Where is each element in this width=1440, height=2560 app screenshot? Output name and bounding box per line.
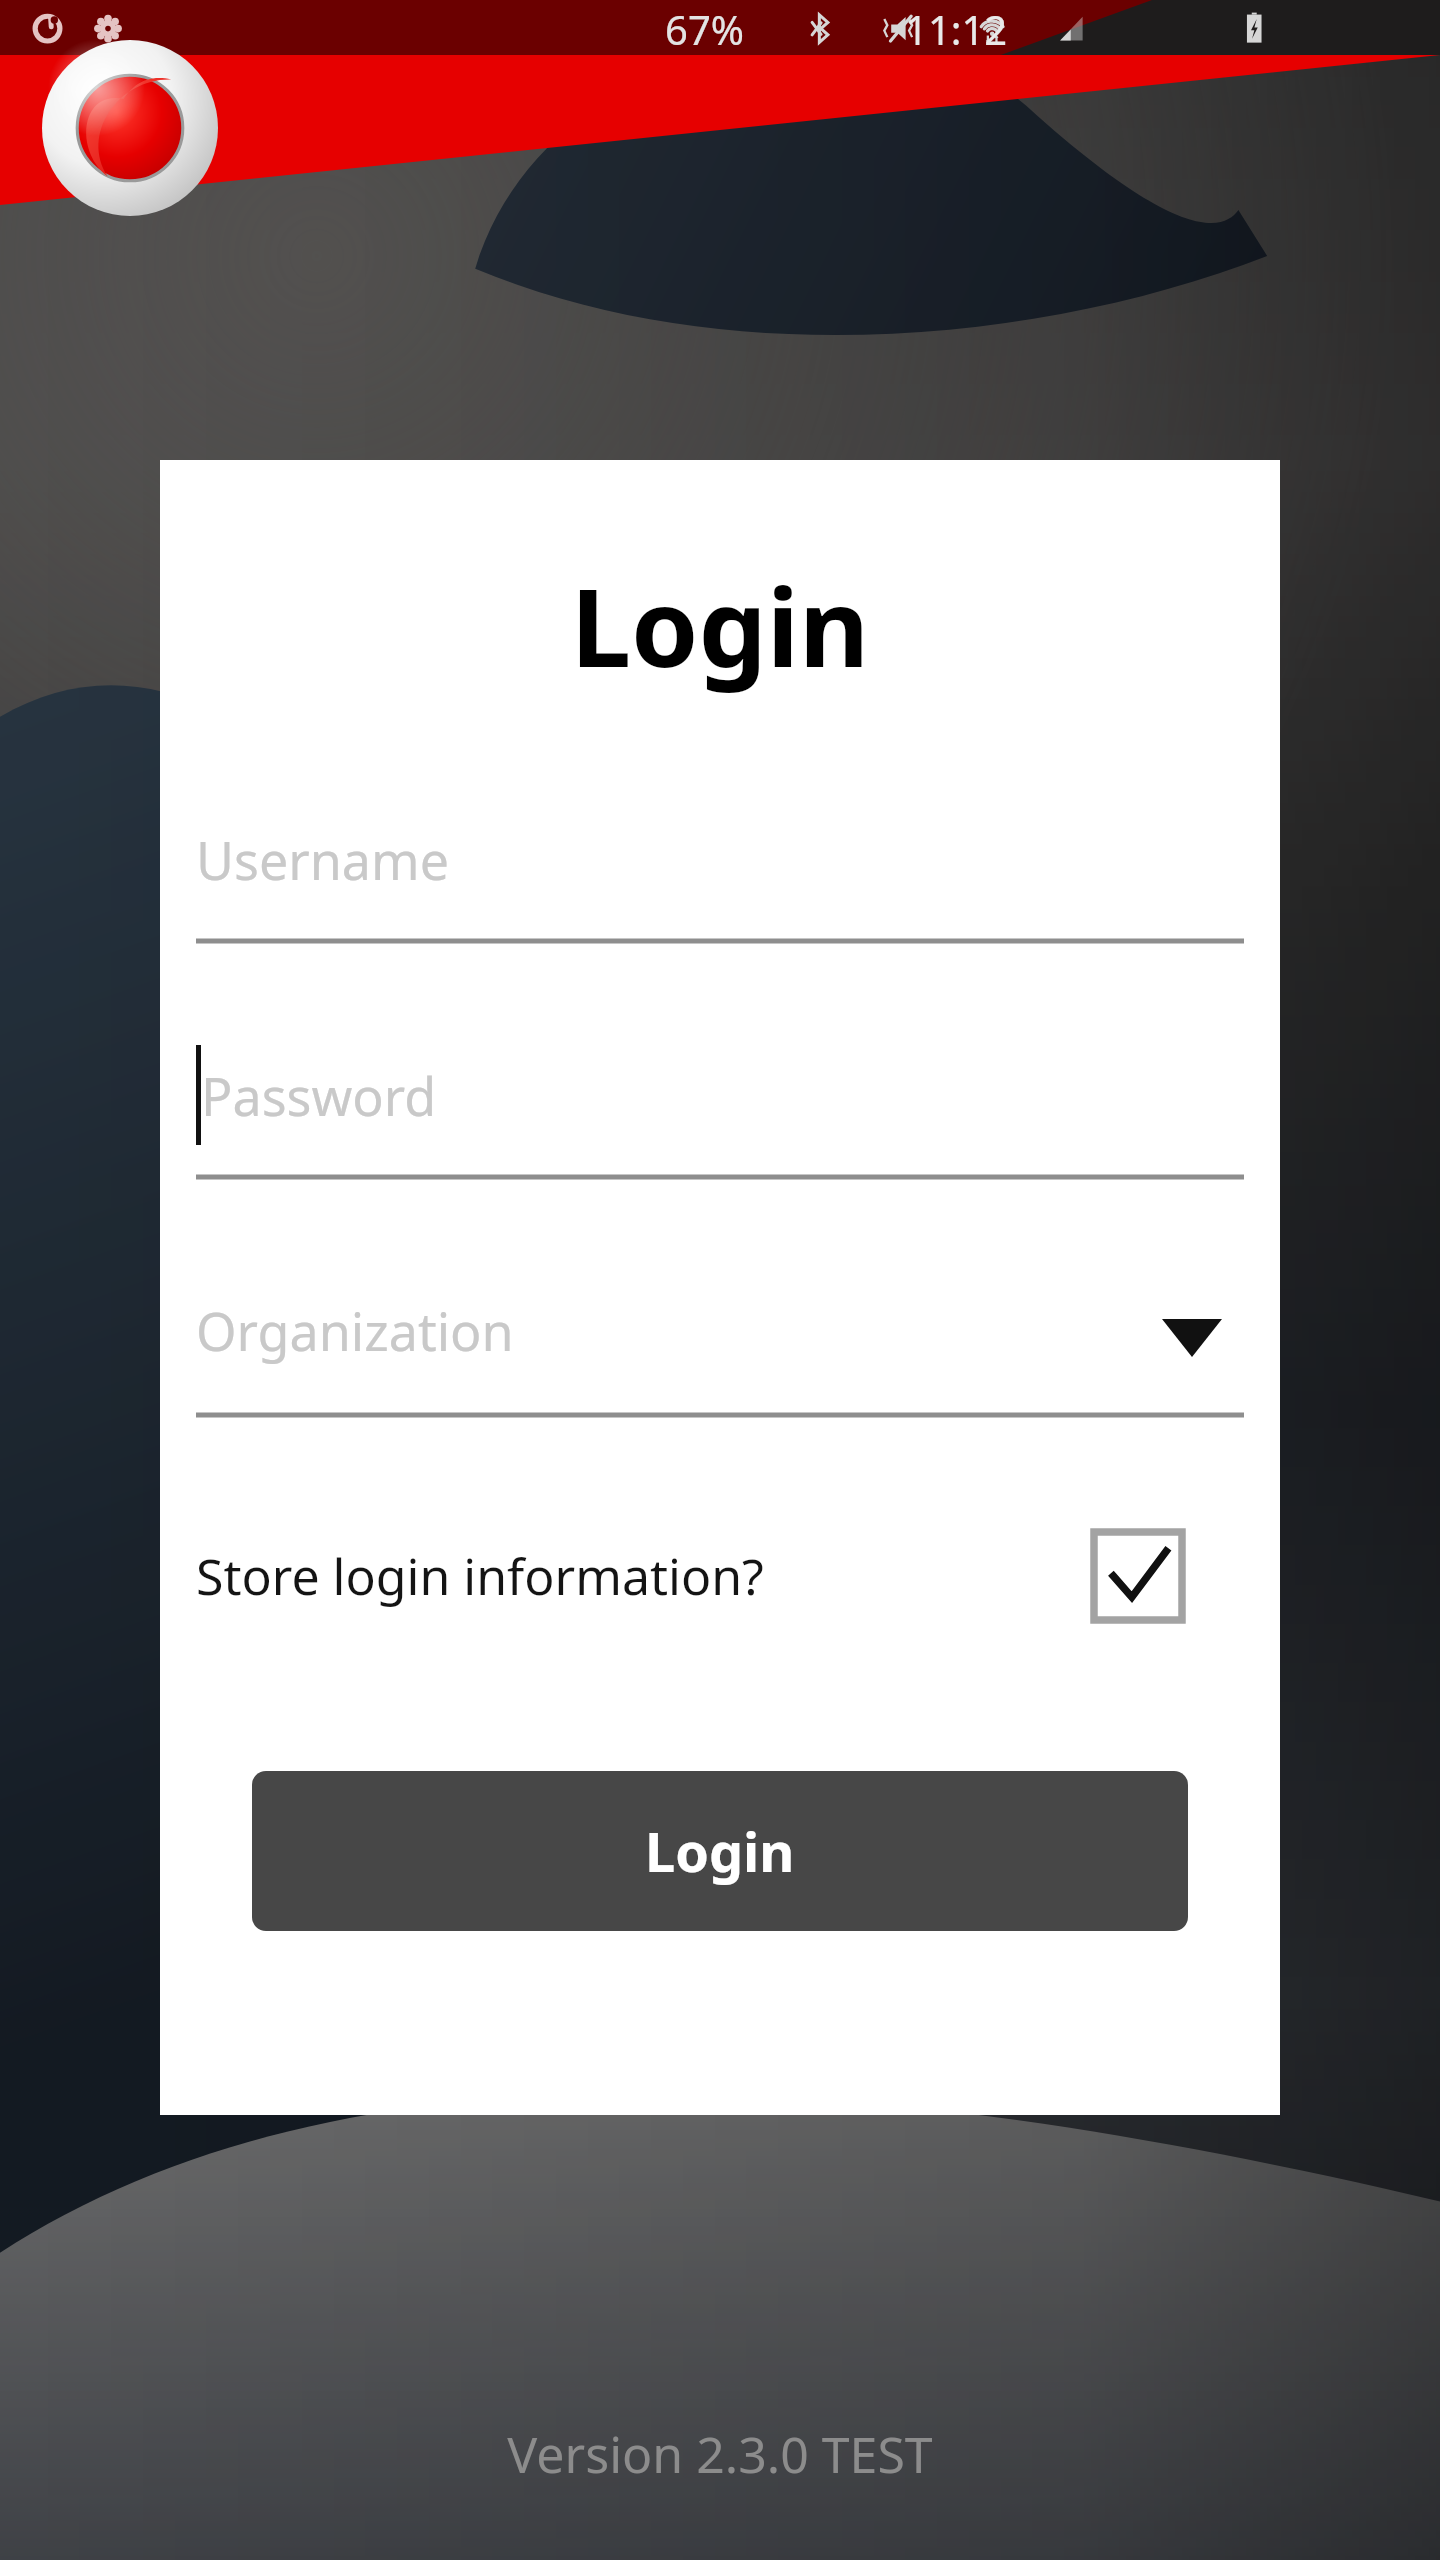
button[interactable]: Username bbox=[196, 799, 1244, 947]
staticText: Store login information? bbox=[196, 1542, 764, 1610]
staticText: Version 2.3.0 TEST bbox=[0, 2420, 1440, 2488]
staticText: Password bbox=[201, 1060, 437, 1131]
staticText: Login bbox=[160, 552, 1280, 699]
button[interactable]: Login bbox=[252, 1771, 1188, 1931]
staticText: Login bbox=[645, 1814, 795, 1888]
staticText: 11:12 bbox=[905, 2, 1008, 56]
button[interactable]: Store login information? bbox=[196, 1511, 1244, 1641]
button[interactable]: Password bbox=[196, 1035, 1244, 1183]
button[interactable]: Organization dropdown bbox=[196, 1271, 1244, 1421]
staticText: Username bbox=[196, 824, 449, 895]
staticText: Organization bbox=[196, 1295, 514, 1366]
staticText: 67% bbox=[665, 2, 744, 56]
